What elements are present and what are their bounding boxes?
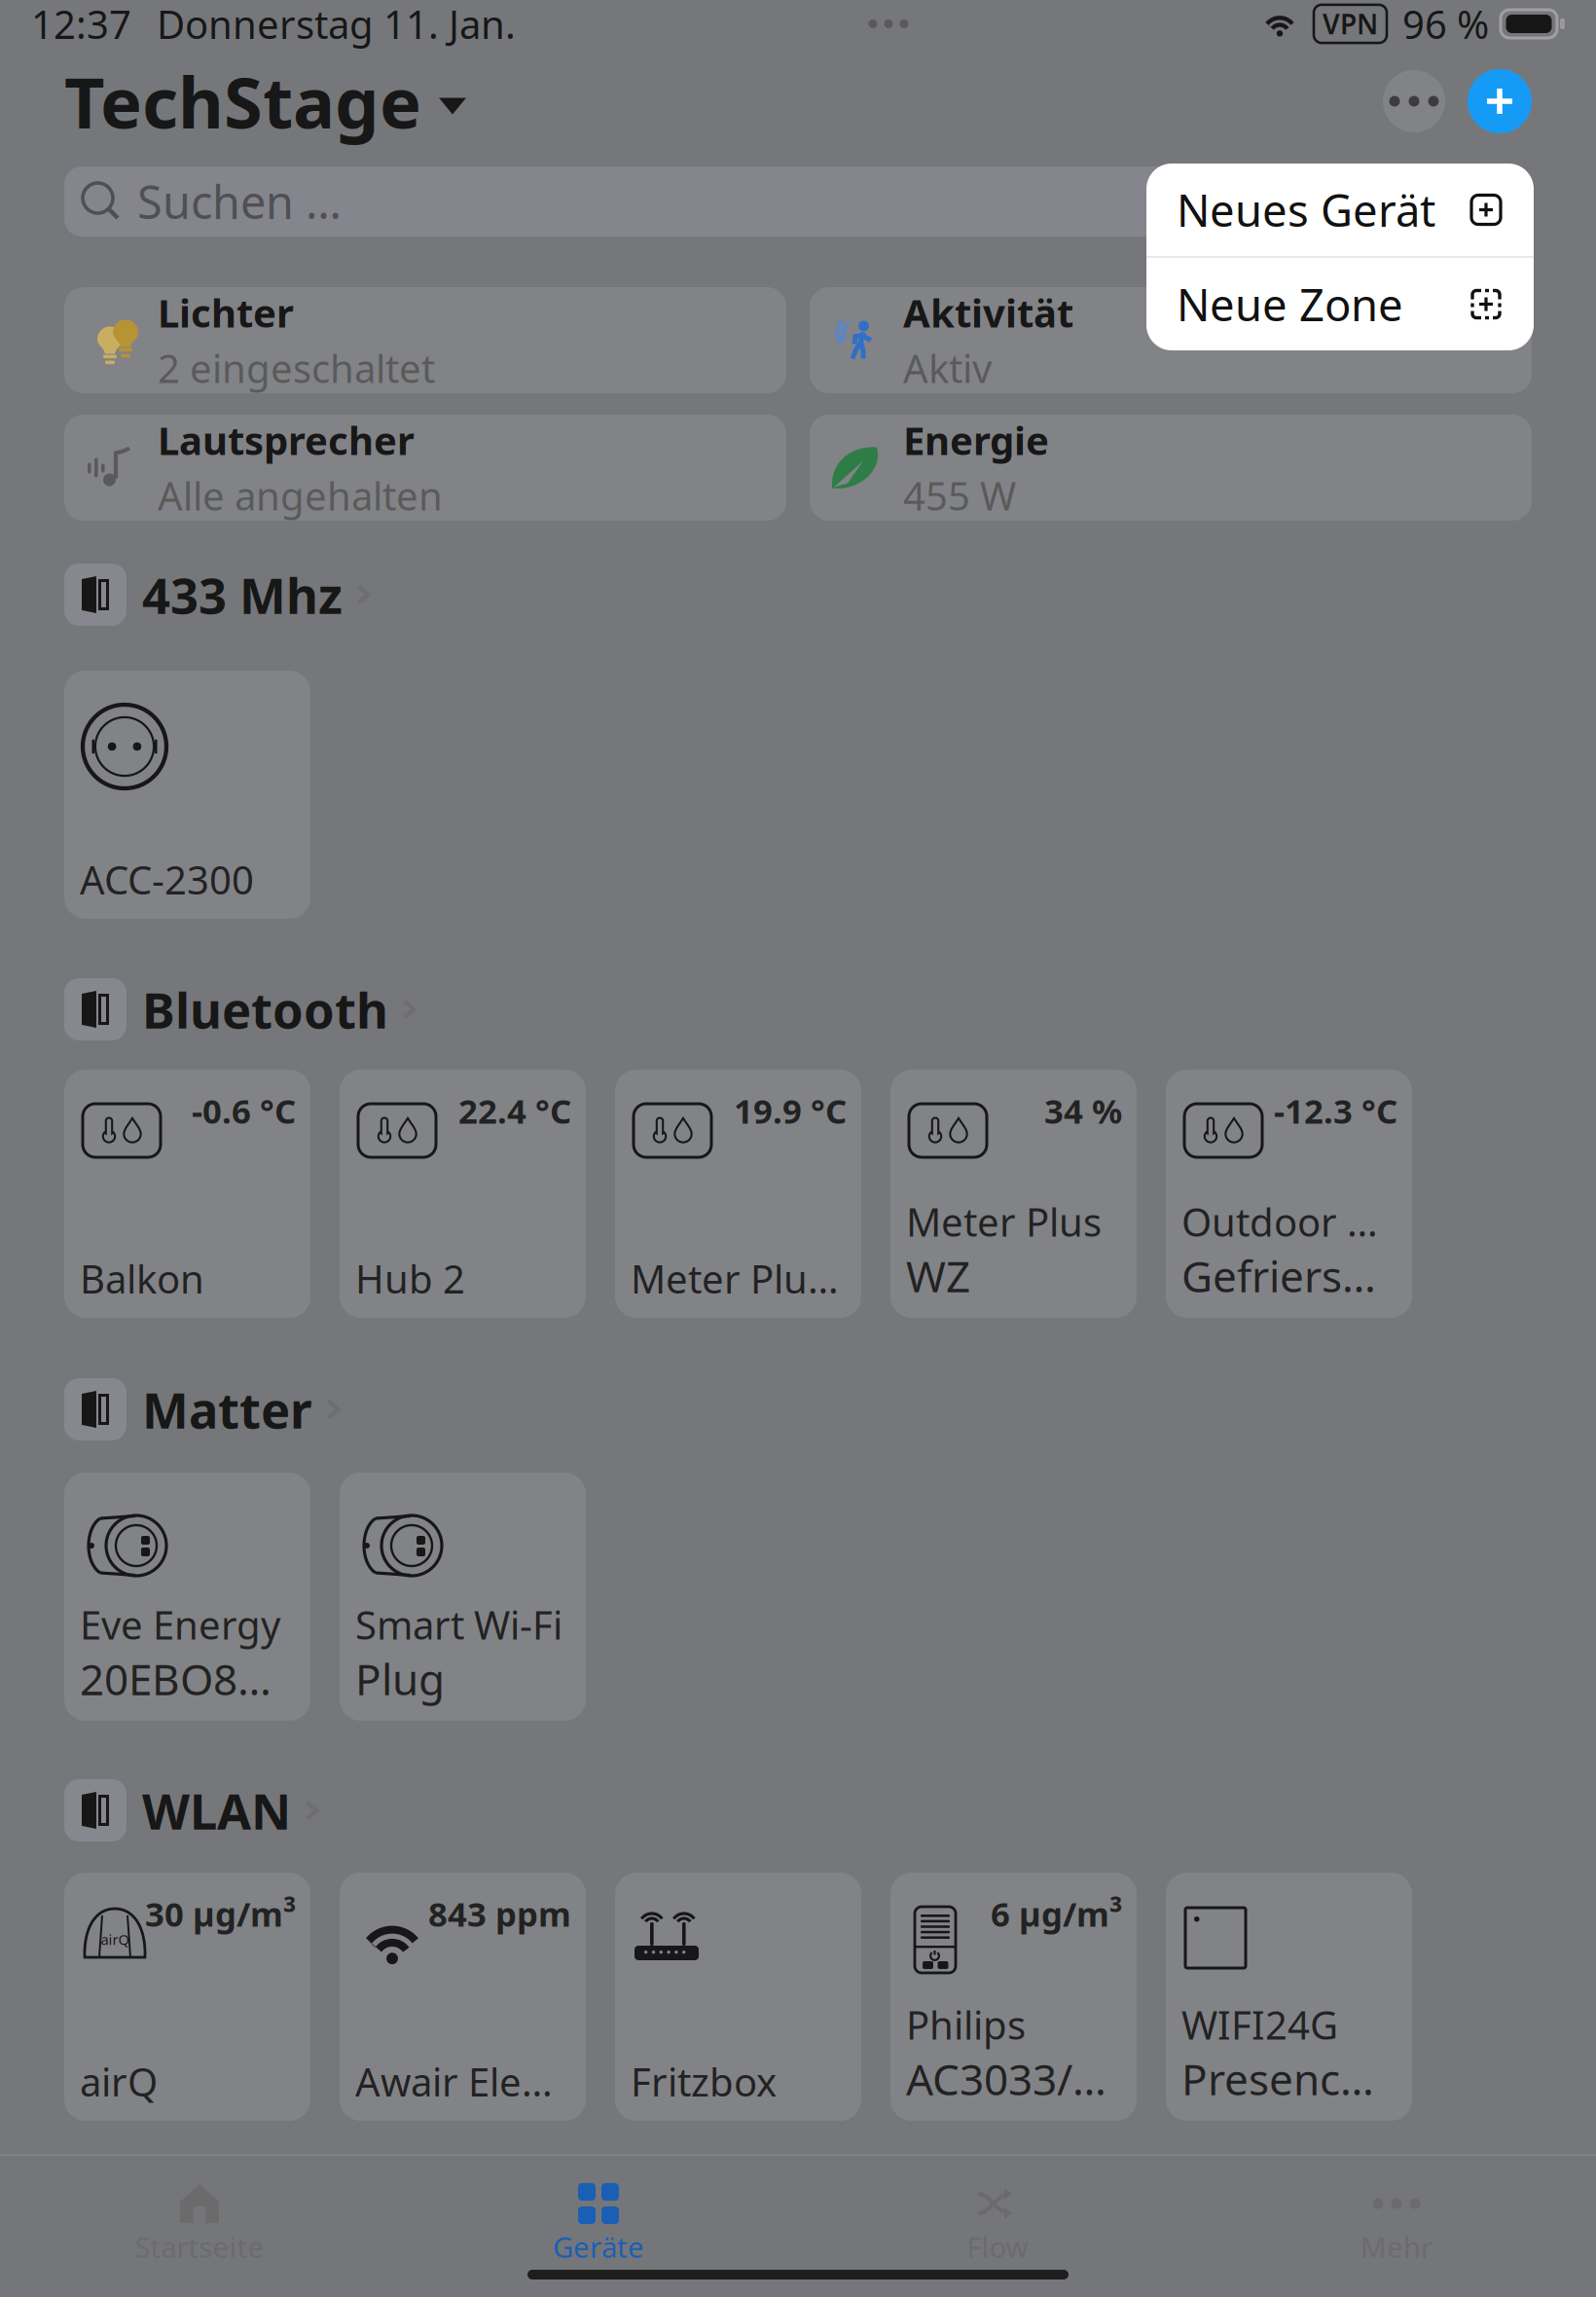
staticText: 433 Mhz: [142, 562, 343, 627]
staticText: Matter: [142, 1377, 312, 1442]
staticText: Mehr: [1360, 2228, 1433, 2266]
staticText: Smart Wi-Fi: [355, 1599, 562, 1650]
staticText: Neues Gerät: [1177, 180, 1435, 239]
staticText: Bluetooth: [142, 977, 388, 1042]
button[interactable]: Bluetooth: [64, 978, 1532, 1040]
button[interactable]: 34 %: [890, 1070, 1137, 1318]
staticText: Geräte: [553, 2228, 644, 2266]
staticText: -12.3 °C: [1274, 1088, 1397, 1133]
button[interactable]: 6 µg/m³: [890, 1873, 1137, 2121]
staticText: 30 µg/m³: [145, 1891, 296, 1936]
button[interactable]: WLAN: [64, 1779, 1532, 1841]
staticText: Aktiv: [903, 342, 992, 394]
button[interactable]: Aktivität: [810, 287, 1532, 393]
staticText: 843 ppm: [428, 1891, 571, 1936]
staticText: Donnerstag 11. Jan.: [157, 0, 516, 50]
button[interactable]: Weitere Optionen: [1383, 70, 1445, 132]
staticText: 20EBO8301: [80, 1650, 293, 1707]
button[interactable]: Hinzufügen: [1468, 69, 1532, 133]
button[interactable]: Suchen …: [64, 166, 1532, 237]
button[interactable]: ACC-2300: [64, 671, 310, 919]
staticText: 19.9 °C: [734, 1088, 847, 1133]
button[interactable]: 843 ppm: [340, 1873, 586, 2121]
staticText: Balkon: [80, 1253, 204, 1304]
button[interactable]: 19.9 °C: [615, 1070, 861, 1318]
button[interactable]: Matter: [64, 1378, 1532, 1440]
staticText: Flow: [967, 2228, 1028, 2266]
button[interactable]: Energie: [810, 415, 1532, 521]
button[interactable]: 30 µg/m³: [64, 1873, 310, 2121]
staticText: airQ: [101, 1930, 129, 1949]
staticText: 34 %: [1044, 1088, 1122, 1133]
staticText: Lautsprecher: [158, 414, 415, 466]
staticText: Suchen …: [137, 171, 342, 232]
staticText: Awair Element: [355, 2056, 568, 2107]
button[interactable]: Eve Energy: [64, 1473, 310, 1721]
button[interactable]: 433 Mhz: [64, 564, 1532, 626]
button[interactable]: Neue Zone: [1146, 258, 1534, 350]
button[interactable]: Smart Wi-Fi: [340, 1473, 586, 1721]
staticText: Neue Zone: [1177, 275, 1403, 333]
staticText: ACC-2300: [80, 853, 254, 905]
button[interactable]: Lichter: [64, 287, 786, 393]
button[interactable]: WIFI24G: [1166, 1873, 1412, 2121]
button[interactable]: Fritzbox: [615, 1873, 861, 2121]
staticText: Eve Energy: [80, 1599, 280, 1650]
staticText: Gefrierschra…: [1181, 1247, 1395, 1304]
staticText: Alle angehalten: [158, 470, 443, 521]
staticText: airQ: [80, 2056, 158, 2107]
staticText: Lichter: [158, 287, 294, 338]
staticText: Energie: [903, 414, 1049, 466]
staticText: 12:37: [31, 0, 131, 50]
staticText: Meter Plus: [906, 1196, 1102, 1247]
staticText: Philips: [906, 1999, 1026, 2050]
button[interactable]: -0.6 °C: [64, 1070, 310, 1318]
staticText: Startseite: [135, 2228, 264, 2266]
staticText: Meter Plus HO: [631, 1253, 844, 1304]
staticText: WLAN: [142, 1778, 291, 1843]
staticText: VPN: [1323, 6, 1378, 42]
staticText: Plug: [355, 1650, 445, 1707]
staticText: AC3033/10: [906, 2050, 1119, 2107]
button[interactable]: Neues Gerät: [1146, 164, 1534, 256]
staticText: TechStage: [64, 55, 421, 148]
staticText: WIFI24G: [1181, 1999, 1338, 2050]
staticText: Presence Se…: [1181, 2050, 1395, 2107]
staticText: -0.6 °C: [192, 1088, 296, 1133]
staticText: Fritzbox: [631, 2056, 777, 2107]
staticText: Aktivität: [903, 287, 1073, 338]
button[interactable]: TechStage: [64, 55, 466, 148]
button[interactable]: Geräte: [399, 2183, 798, 2292]
staticText: WZ: [906, 1247, 970, 1304]
button[interactable]: Flow: [798, 2183, 1197, 2292]
staticText: 6 µg/m³: [991, 1891, 1122, 1936]
staticText: 2 eingeschaltet: [158, 342, 435, 394]
button[interactable]: -12.3 °C: [1166, 1070, 1412, 1318]
staticText: 22.4 °C: [458, 1088, 571, 1133]
staticText: Hub 2: [355, 1253, 465, 1304]
staticText: Outdoor Meter: [1181, 1196, 1395, 1247]
button[interactable]: 22.4 °C: [340, 1070, 586, 1318]
button[interactable]: Lautsprecher: [64, 415, 786, 521]
staticText: 455 W: [903, 470, 1016, 521]
staticText: 96 %: [1402, 0, 1489, 50]
